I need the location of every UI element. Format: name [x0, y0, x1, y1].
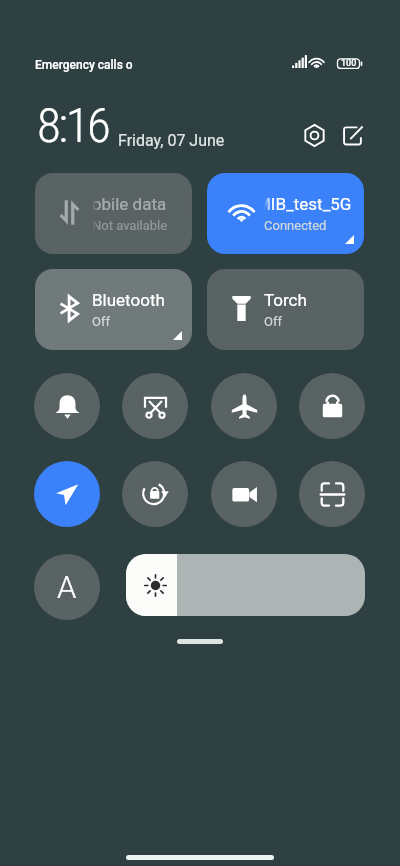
- staticText: 100: [341, 58, 357, 69]
- button[interactable]: Edit: [340, 121, 369, 150]
- staticText: Mobile data: [92, 194, 167, 214]
- button[interactable]: Screen record: [211, 461, 277, 527]
- button[interactable]: Airplane mode: [211, 373, 277, 439]
- button[interactable]: Auto rotate: [122, 461, 188, 527]
- staticText: Connected: [264, 218, 327, 233]
- button[interactable]: Brightness: [126, 554, 365, 616]
- button[interactable]: Auto brightness: [34, 554, 100, 620]
- button[interactable]: Lock: [299, 373, 365, 439]
- staticText: Emergency calls o: [35, 58, 133, 72]
- staticText: Off: [264, 314, 282, 329]
- button[interactable]: MIB_test_5G: [207, 173, 364, 254]
- staticText: Off: [92, 314, 110, 329]
- button[interactable]: Notifications: [34, 373, 100, 439]
- staticText: 8:16: [37, 97, 109, 154]
- button[interactable]: Torch: [207, 269, 364, 350]
- staticText: MIB_test_5G: [264, 194, 352, 214]
- button[interactable]: Bluetooth: [35, 269, 192, 350]
- button[interactable]: Settings: [300, 121, 329, 150]
- staticText: Not available: [92, 218, 168, 233]
- button[interactable]: Screenshot: [122, 373, 188, 439]
- button[interactable]: Mobile data: [35, 173, 192, 254]
- staticText: Torch: [264, 290, 307, 310]
- button[interactable]: Scan QR code: [299, 461, 365, 527]
- staticText: A: [57, 569, 77, 605]
- staticText: Bluetooth: [92, 290, 165, 310]
- staticText: Friday, 07 June: [118, 131, 225, 150]
- button[interactable]: Location: [34, 461, 100, 527]
